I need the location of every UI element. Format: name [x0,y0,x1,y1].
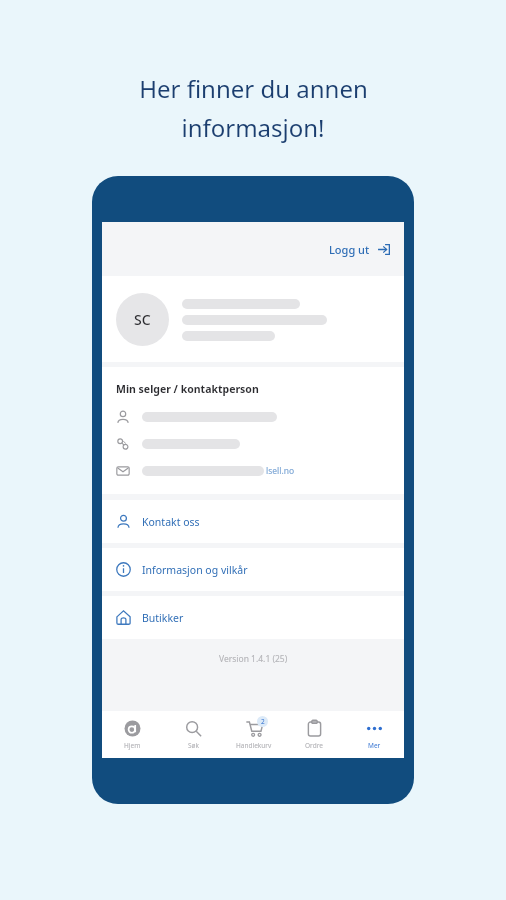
staticText: Handlekurv [236,741,272,750]
staticText: Hjem [124,741,141,750]
button[interactable]: Hjem [102,711,163,758]
button[interactable]: Ordre [284,711,344,758]
staticText: Min selger / kontaktperson [116,382,259,396]
button[interactable]: Søk [163,711,224,758]
staticText: Søk [188,741,199,750]
button[interactable]: Logg ut [315,236,404,263]
staticText: Informasjon og vilkår [142,563,248,577]
staticText: lsell.no [266,465,295,477]
button[interactable]: Mer [344,711,404,758]
button[interactable]: SC [102,276,404,362]
staticText: Mer [368,741,381,750]
staticText: Version 1.4.1 (25) [219,653,288,665]
staticText: 2 [261,717,265,726]
staticText: Logg ut [329,242,370,257]
staticText: Kontakt oss [142,515,200,529]
staticText: informasjon! [181,111,325,144]
staticText: SC [134,310,151,329]
button[interactable]: Butikker [102,596,404,639]
staticText: Ordre [305,741,323,750]
staticText: Butikker [142,611,184,625]
button[interactable]: Informasjon og vilkår [102,548,404,591]
staticText: Her finner du annen [139,72,368,105]
button[interactable]: 2 [224,711,284,758]
button[interactable]: Kontakt oss [102,500,404,543]
